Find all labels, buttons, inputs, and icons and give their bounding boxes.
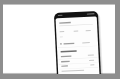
- button[interactable]: Phone mockup showing a settings screen: [0, 0, 120, 79]
